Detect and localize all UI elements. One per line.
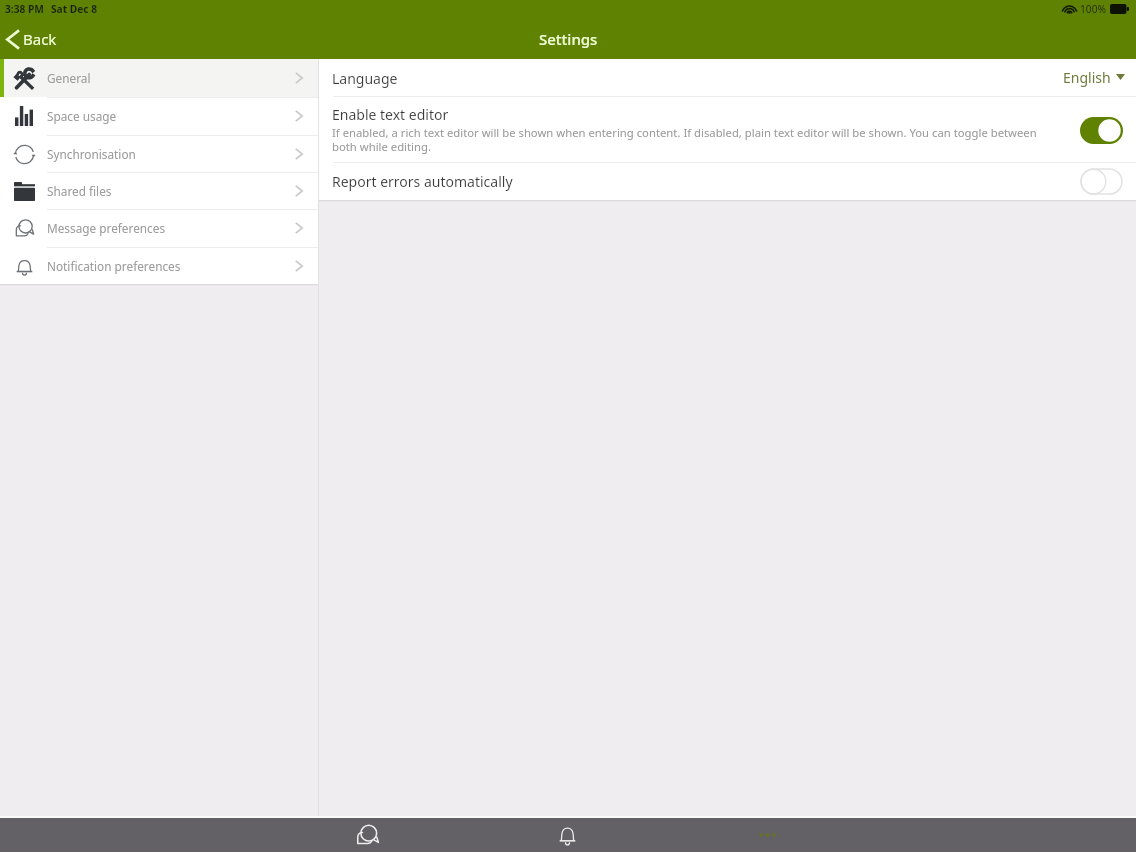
button[interactable]: Back — [0, 23, 67, 55]
button[interactable]: Notifications — [547, 818, 587, 852]
staticText: Report errors automatically — [332, 172, 513, 191]
staticText: 100% — [1080, 2, 1106, 16]
button[interactable]: More — [747, 818, 787, 852]
staticText: Message preferences — [47, 220, 166, 236]
button[interactable]: Toggle off — [1080, 168, 1123, 195]
staticText: Enable text editor — [332, 105, 449, 124]
staticText: General — [47, 70, 91, 86]
button[interactable]: Enable text editor — [319, 97, 1136, 163]
staticText: If enabled, a rich text editor will be s… — [332, 125, 1044, 155]
button[interactable]: General — [0, 59, 318, 97]
staticText: Sat Dec 8 — [51, 2, 98, 16]
button[interactable]: Synchronisation — [0, 135, 318, 172]
staticText: English — [1063, 68, 1111, 87]
button[interactable]: Toggle on — [1080, 117, 1123, 144]
button[interactable]: Shared files — [0, 172, 318, 209]
staticText: Shared files — [47, 183, 112, 199]
staticText: 3:38 PM — [5, 2, 44, 16]
staticText: Back — [23, 29, 57, 49]
button[interactable]: Space usage — [0, 97, 318, 135]
button[interactable]: Message preferences — [0, 209, 318, 247]
staticText: Language — [332, 69, 398, 88]
button[interactable]: Messages — [347, 818, 387, 852]
button[interactable]: Language — [319, 59, 1136, 97]
staticText: Space usage — [47, 108, 117, 124]
staticText: Synchronisation — [47, 146, 136, 162]
button[interactable]: Report errors automatically — [319, 163, 1136, 200]
staticText: Notification preferences — [47, 258, 181, 274]
button[interactable]: Notification preferences — [0, 247, 318, 284]
staticText: Settings — [539, 29, 598, 49]
